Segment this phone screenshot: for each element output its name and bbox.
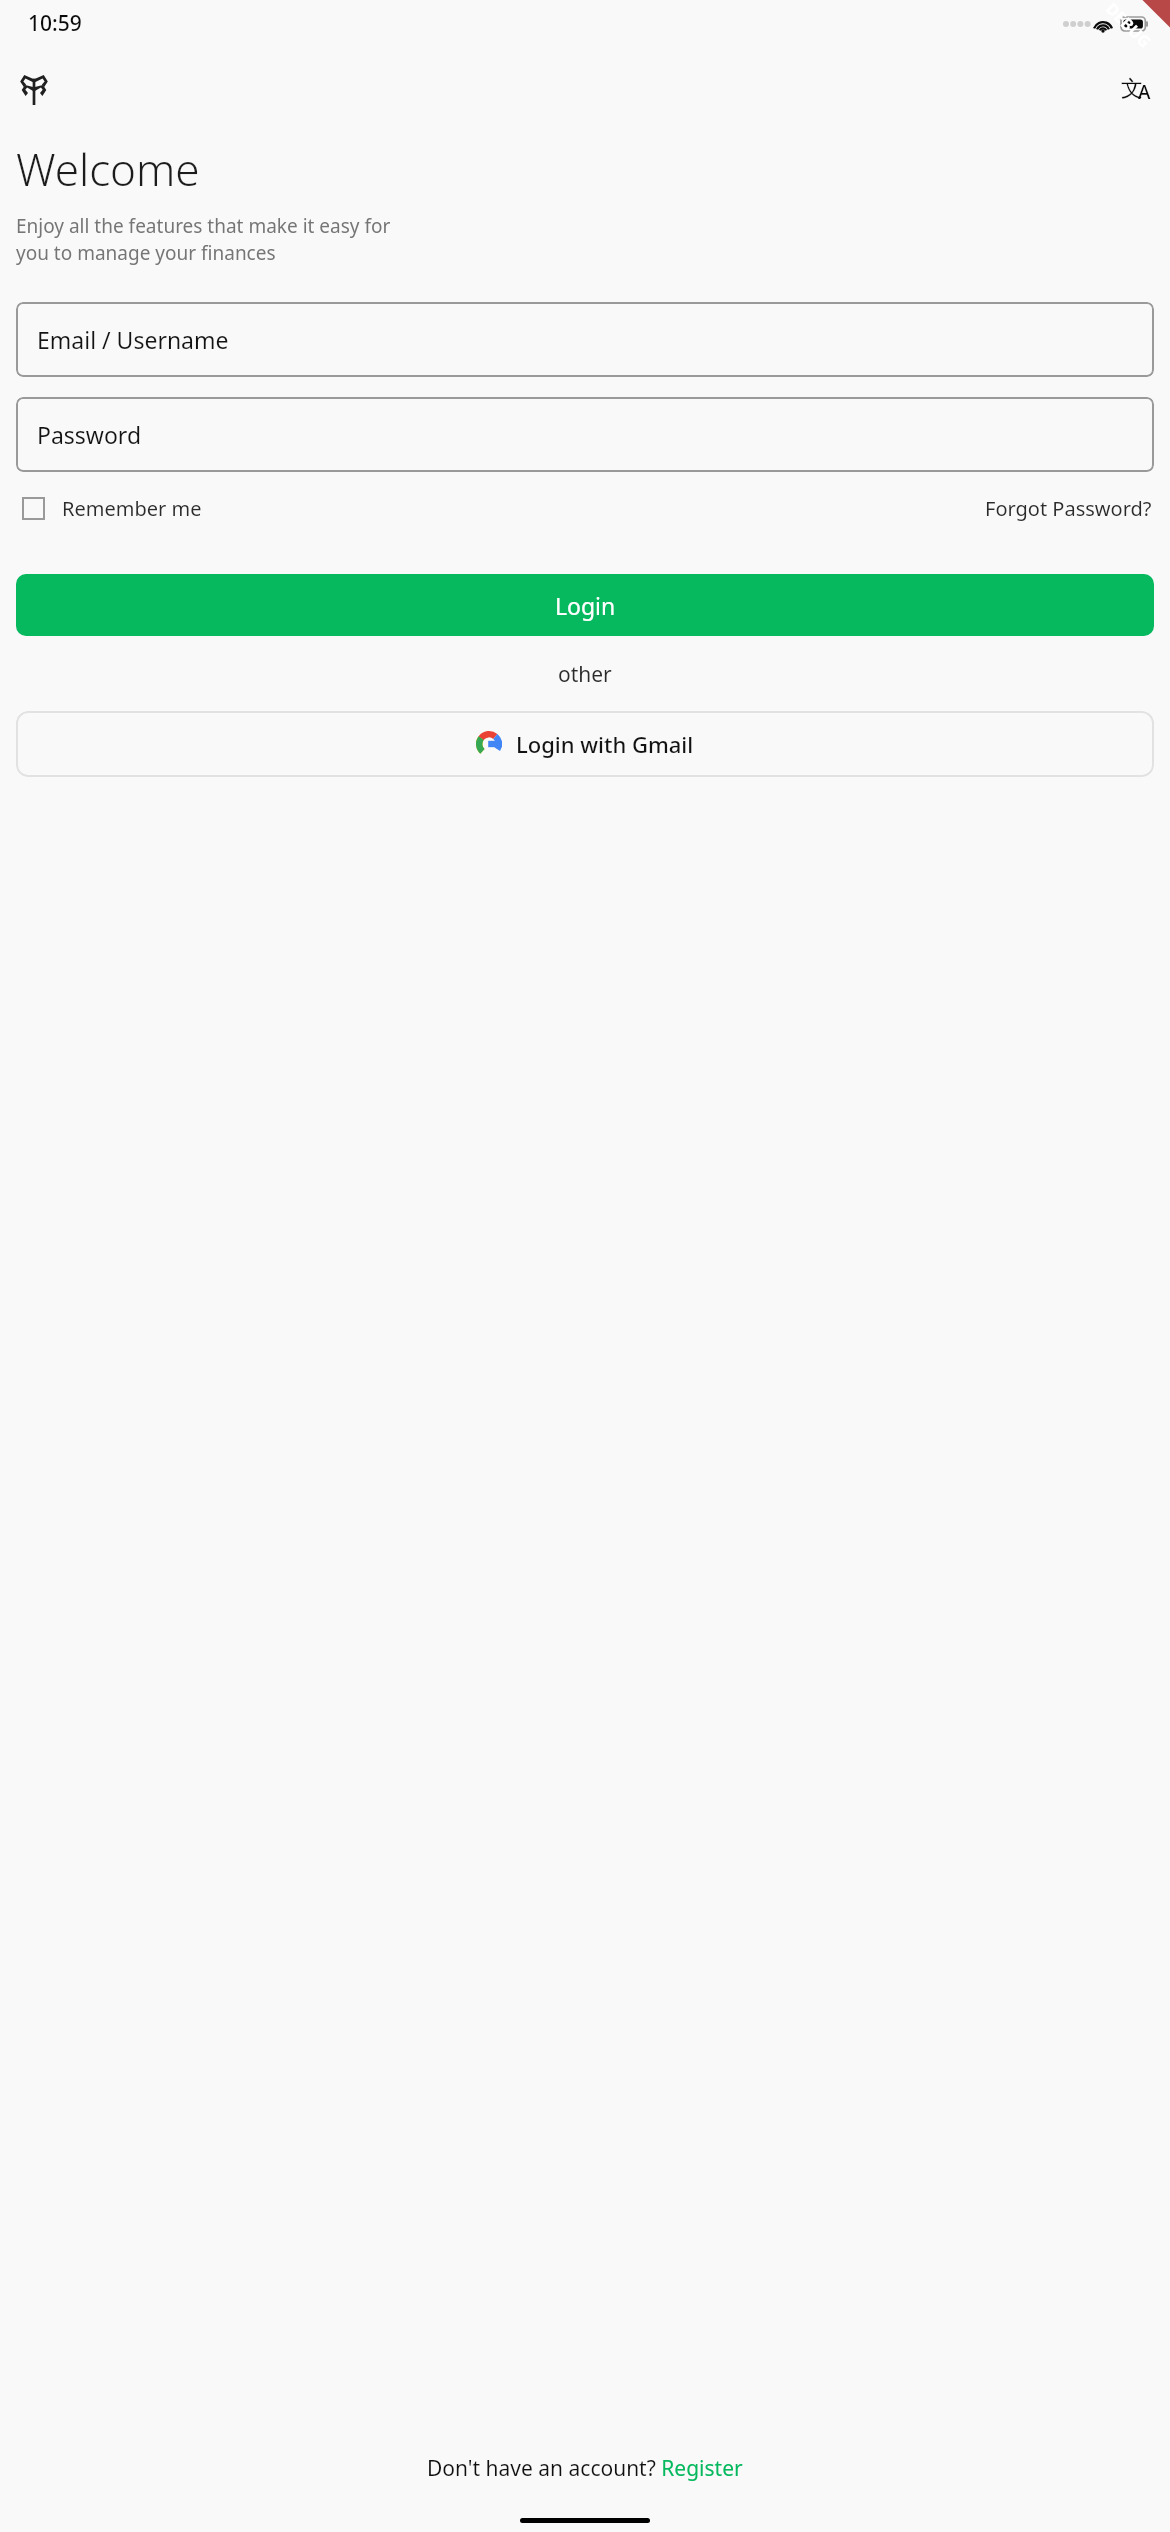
staticText: 10:59 bbox=[28, 9, 82, 38]
staticText: Login with Gmail bbox=[516, 729, 694, 759]
staticText: A bbox=[1138, 79, 1151, 105]
staticText: Welcome bbox=[16, 139, 200, 199]
button[interactable]: Email / Username bbox=[16, 302, 1154, 377]
staticText: Enjoy all the features that make it easy… bbox=[16, 213, 408, 266]
staticText: Don't have an account? Register bbox=[427, 2454, 743, 2483]
button[interactable]: Don't have an account? Register bbox=[0, 2454, 1170, 2483]
button[interactable]: Forgot Password? bbox=[983, 495, 1154, 522]
staticText: DEBUG bbox=[1101, 0, 1156, 52]
button[interactable]: Login bbox=[16, 574, 1154, 636]
staticText: Email / Username bbox=[37, 324, 229, 355]
staticText: Remember me bbox=[62, 495, 202, 522]
button[interactable]: App logo bbox=[11, 67, 57, 113]
button[interactable]: Password bbox=[16, 397, 1154, 472]
staticText: 文 bbox=[1121, 75, 1143, 103]
staticText: Forgot Password? bbox=[985, 495, 1152, 522]
button[interactable]: Change language bbox=[1113, 67, 1159, 113]
staticText: Password bbox=[37, 419, 142, 450]
button[interactable]: Remember me bbox=[16, 495, 208, 522]
button[interactable]: Login with Gmail bbox=[16, 711, 1154, 777]
staticText: Login bbox=[555, 590, 616, 621]
staticText: other bbox=[558, 660, 612, 689]
